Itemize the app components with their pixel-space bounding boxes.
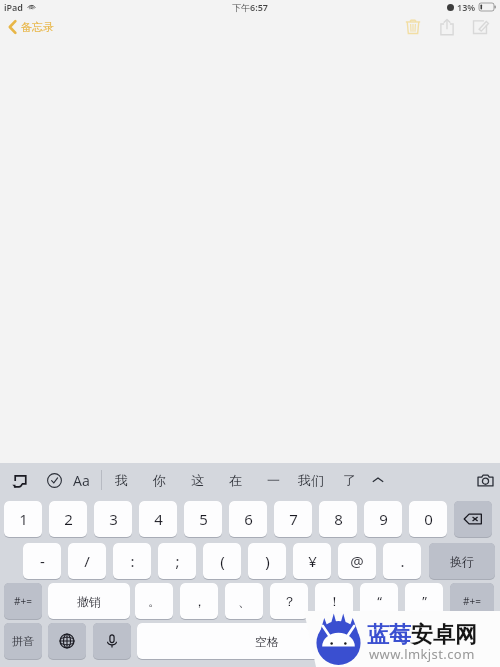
button[interactable]: #+= <box>450 583 494 619</box>
button[interactable]: 空格 <box>137 623 396 659</box>
button[interactable]: ？ <box>270 583 308 619</box>
button[interactable]: New note <box>467 14 493 40</box>
staticText: Aa <box>73 471 90 490</box>
button[interactable]: ！ <box>315 583 353 619</box>
staticText: 备忘录 <box>21 20 54 34</box>
staticText: iPad <box>4 1 23 13</box>
button[interactable]: 5 <box>184 501 222 537</box>
button[interactable]: 9 <box>364 501 402 537</box>
button[interactable]: ， <box>180 583 218 619</box>
staticText: @ <box>350 551 364 571</box>
button[interactable]: - <box>23 543 61 579</box>
staticText: #+= <box>463 594 481 608</box>
button[interactable]: Share <box>434 14 460 40</box>
staticText: ) <box>265 551 270 571</box>
staticText: 我 <box>115 472 128 488</box>
button[interactable]: Delete <box>400 14 426 40</box>
button[interactable]: 6 <box>229 501 267 537</box>
staticText: “ <box>377 592 382 610</box>
button[interactable]: 我 <box>103 463 139 497</box>
staticText: 这 <box>191 472 204 488</box>
button[interactable]: 4 <box>139 501 177 537</box>
staticText: 6 <box>244 509 253 529</box>
button[interactable]: Dictate <box>93 623 131 659</box>
staticText: 13% <box>457 1 476 13</box>
button[interactable]: ( <box>203 543 241 579</box>
staticText: 一 <box>267 472 280 488</box>
button[interactable]: “ <box>360 583 398 619</box>
button[interactable]: More suggestions <box>366 468 390 492</box>
button[interactable]: 一 <box>255 463 291 497</box>
button[interactable]: #+= <box>4 583 42 619</box>
staticText: 我们 <box>298 472 324 488</box>
staticText: 空格 <box>255 634 279 649</box>
button[interactable]: Camera <box>472 467 498 493</box>
button[interactable]: Confirm <box>42 468 66 492</box>
staticText: 2 <box>64 509 73 529</box>
staticText: www.lmkjst.com <box>369 645 475 663</box>
button[interactable]: Text format <box>68 467 94 493</box>
button[interactable]: 3 <box>94 501 132 537</box>
staticText: 、 <box>238 593 251 609</box>
button[interactable]: / <box>68 543 106 579</box>
button[interactable]: . <box>383 543 421 579</box>
staticText: 。 <box>148 593 161 609</box>
staticText: ; <box>175 551 180 571</box>
button[interactable]: 撤销 <box>48 583 130 619</box>
staticText: 安卓网 <box>411 621 477 649</box>
button[interactable]: 2 <box>49 501 87 537</box>
button[interactable]: 1 <box>4 501 42 537</box>
button[interactable]: ) <box>248 543 286 579</box>
staticText: 1 <box>19 509 28 529</box>
staticText: 撤销 <box>77 594 101 609</box>
staticText: 蓝莓 <box>367 621 411 649</box>
staticText: 5 <box>199 509 208 529</box>
button[interactable]: 8 <box>319 501 357 537</box>
button[interactable]: 、 <box>225 583 263 619</box>
button[interactable]: @ <box>338 543 376 579</box>
button[interactable]: 拼音 <box>4 623 42 659</box>
staticText: ( <box>220 551 225 571</box>
button[interactable]: : <box>113 543 151 579</box>
staticText: 4 <box>154 509 163 529</box>
button[interactable]: Undo <box>8 468 32 492</box>
button[interactable]: 换行 <box>429 543 495 579</box>
staticText: #+= <box>14 594 32 608</box>
staticText: - <box>40 551 45 571</box>
staticText: 下午6:57 <box>232 1 268 13</box>
button[interactable]: ” <box>405 583 443 619</box>
staticText: . <box>400 551 405 571</box>
staticText: 9 <box>379 509 388 529</box>
button[interactable]: 了 <box>331 463 367 497</box>
staticText: 3 <box>109 509 118 529</box>
staticText: 换行 <box>450 554 474 569</box>
button[interactable]: 我们 <box>293 463 329 497</box>
staticText: ？ <box>283 593 296 609</box>
button[interactable]: Backspace <box>454 501 492 537</box>
staticText: 了 <box>343 472 356 488</box>
button[interactable]: 。 <box>135 583 173 619</box>
button[interactable]: Hide keyboard <box>454 623 492 659</box>
staticText: / <box>84 551 90 571</box>
button[interactable]: ; <box>158 543 196 579</box>
staticText: 拼音 <box>12 634 34 648</box>
staticText: : <box>130 551 135 571</box>
staticText: 0 <box>424 509 433 529</box>
staticText: ！ <box>328 593 341 609</box>
button[interactable]: 7 <box>274 501 312 537</box>
button[interactable] <box>400 623 450 659</box>
button[interactable]: 备忘录 <box>5 16 57 38</box>
button[interactable]: ¥ <box>293 543 331 579</box>
staticText: 你 <box>153 472 166 488</box>
staticText: 8 <box>334 509 343 529</box>
staticText: ” <box>422 592 427 610</box>
button[interactable]: 这 <box>179 463 215 497</box>
staticText: ， <box>193 593 206 609</box>
button[interactable]: Globe <box>48 623 86 659</box>
button[interactable]: 0 <box>409 501 447 537</box>
staticText: 在 <box>229 472 242 488</box>
button[interactable]: 在 <box>217 463 253 497</box>
button[interactable]: 你 <box>141 463 177 497</box>
staticText: ¥ <box>308 551 317 571</box>
staticText: 7 <box>289 509 298 529</box>
